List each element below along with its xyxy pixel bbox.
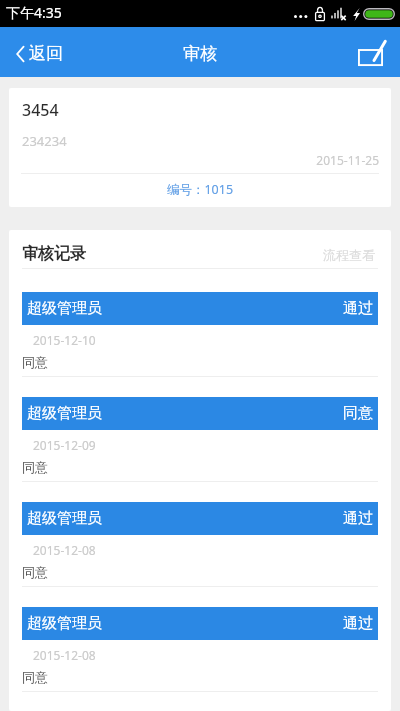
button[interactable]: 超级管理员 (9, 482, 391, 587)
staticText: 同意 (22, 354, 48, 370)
button[interactable]: Edit (348, 28, 400, 76)
staticText: 同意 (22, 669, 48, 685)
button[interactable]: 超级管理员 (9, 587, 391, 692)
staticText: 通过 (343, 614, 373, 633)
staticText: 超级管理员 (27, 614, 102, 633)
staticText: 审核 (183, 43, 217, 64)
staticText: 返回 (29, 43, 63, 64)
staticText: 审核记录 (22, 244, 86, 264)
staticText: 超级管理员 (27, 299, 102, 318)
button[interactable]: 超级管理员 (9, 377, 391, 482)
staticText: 2015-12-10 (33, 332, 96, 348)
staticText: 3454 (22, 99, 59, 121)
staticText: 通过 (343, 509, 373, 528)
staticText: 同意 (22, 459, 48, 475)
button[interactable]: 流程查看 (323, 235, 391, 263)
button[interactable]: 超级管理员 (9, 272, 391, 377)
staticText: 同意 (22, 564, 48, 580)
button[interactable]: 返回 (0, 29, 77, 75)
staticText: 同意 (343, 404, 373, 423)
staticText: 2015-12-09 (33, 437, 96, 453)
staticText: 编号：1015 (9, 181, 391, 198)
staticText: 2015-11-25 (9, 152, 379, 168)
staticText: 超级管理员 (27, 404, 102, 423)
staticText: 2015-12-08 (33, 542, 96, 558)
staticText: 2015-12-08 (33, 647, 96, 663)
staticText: 下午4:35 (6, 3, 62, 22)
staticText: 234234 (22, 132, 67, 150)
staticText: 通过 (343, 299, 373, 318)
staticText: 超级管理员 (27, 509, 102, 528)
